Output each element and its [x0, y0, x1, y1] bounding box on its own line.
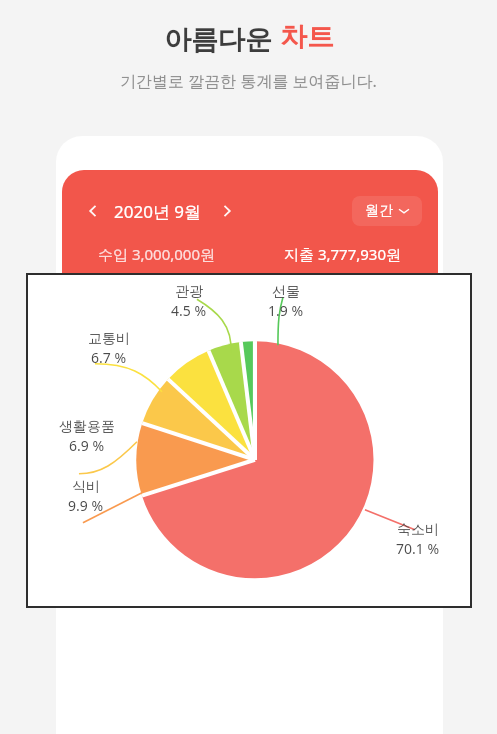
staticText: 373,622원 [354, 479, 425, 499]
staticText: 70% [85, 429, 109, 445]
button[interactable]: Previous month [78, 196, 108, 226]
staticText: 관광 [175, 283, 203, 301]
staticText: 1.9 % [268, 301, 304, 320]
staticText: 9.9 % [68, 496, 104, 515]
button[interactable]: 7& [56, 515, 443, 566]
staticText: 숙소비 [138, 427, 183, 446]
staticText: 기간별로 깔끔한 통계를 보여줍니다. [120, 70, 377, 92]
staticText: 2020년 9월 [114, 200, 202, 223]
staticText: 지출 3,777,930원 [284, 244, 402, 264]
staticText: 10% [85, 481, 109, 497]
staticText: 6.7 % [91, 348, 127, 367]
staticText: 70.1 % [396, 539, 440, 558]
button[interactable]: 70% [56, 411, 443, 462]
staticText: 2,650,000원 [341, 427, 425, 447]
staticText: 아름다운 [164, 20, 280, 57]
staticText: 6.9 % [69, 436, 105, 455]
staticText: 교통비 [88, 330, 130, 348]
staticText: 생활용품 [59, 418, 115, 436]
staticText: 4.5 % [171, 301, 207, 320]
button[interactable]: 월간 [352, 196, 422, 226]
button[interactable]: 10% [56, 463, 443, 514]
staticText: 숙소비 [397, 521, 439, 539]
staticText: 259,828원 [354, 531, 425, 551]
staticText: 식비 [72, 478, 100, 496]
staticText: 선물 [272, 283, 300, 301]
staticText: 식비 [138, 479, 168, 498]
staticText: 수입 3,000,000원 [98, 244, 216, 264]
button[interactable]: Next month [212, 196, 242, 226]
staticText: 차트 [280, 20, 334, 54]
staticText: 생활용품 [138, 531, 198, 550]
staticText: 월간 [365, 202, 393, 220]
